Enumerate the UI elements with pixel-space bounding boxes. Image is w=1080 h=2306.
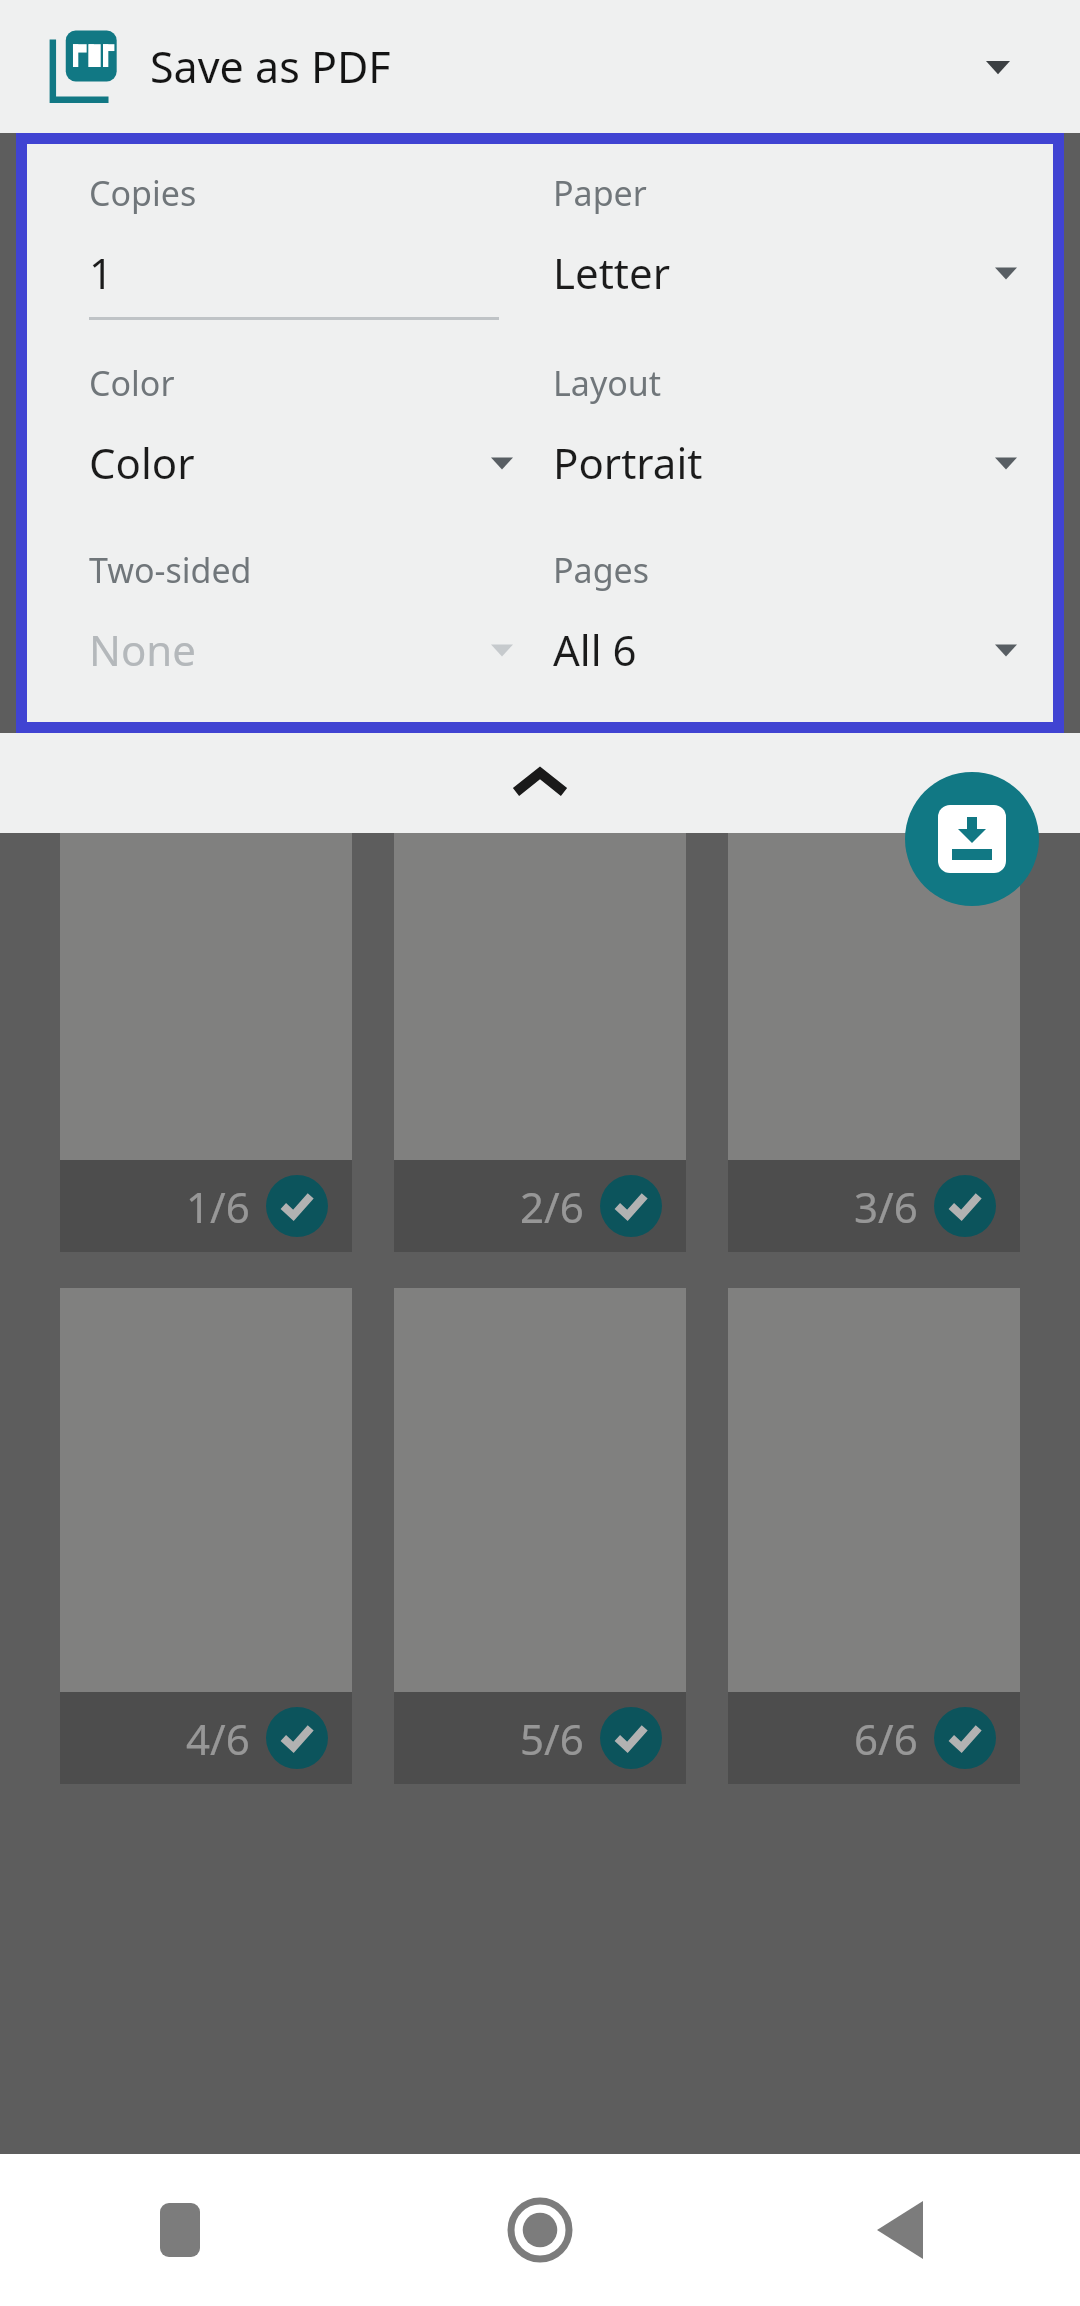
button[interactable]: Save as PDF	[0, 0, 1080, 133]
staticText: Paper	[553, 170, 647, 216]
staticText: 6/6	[854, 1710, 918, 1767]
staticText: 2/6	[520, 1178, 584, 1235]
staticText: Letter	[553, 244, 671, 301]
staticText: 1/6	[186, 1178, 250, 1235]
staticText: 4/6	[186, 1710, 250, 1767]
staticText: Color	[89, 434, 195, 491]
staticText: Copies	[89, 170, 197, 216]
staticText: All 6	[553, 621, 637, 678]
staticText: Layout	[553, 360, 662, 406]
button[interactable]: Home	[360, 2154, 720, 2306]
button[interactable]: Back	[720, 2154, 1080, 2306]
button[interactable]: Recent apps	[0, 2154, 360, 2306]
button[interactable]: 4/6	[60, 1288, 352, 1784]
staticText: Portrait	[553, 434, 703, 491]
staticText: Color	[89, 360, 175, 406]
button[interactable]: Save as PDF	[905, 772, 1039, 906]
button[interactable]: Letter	[553, 244, 1017, 301]
button[interactable]: Portrait	[553, 434, 1017, 491]
button[interactable]: None	[89, 621, 513, 678]
staticText: 1	[89, 244, 114, 301]
button[interactable]: 1	[89, 244, 513, 301]
button[interactable]: Color	[89, 434, 513, 491]
staticText: 5/6	[520, 1710, 584, 1767]
staticText: Save as PDF	[150, 37, 391, 96]
button[interactable]: Choose printer	[962, 31, 1034, 103]
button[interactable]: 6/6	[728, 1288, 1020, 1784]
staticText: Two-sided	[89, 547, 252, 593]
staticText: 3/6	[854, 1178, 918, 1235]
button[interactable]: 1/6	[60, 756, 352, 1252]
staticText: Pages	[553, 547, 650, 593]
button[interactable]: 3/6	[728, 756, 1020, 1252]
staticText: None	[89, 621, 196, 678]
button[interactable]: 5/6	[394, 1288, 686, 1784]
button[interactable]: All 6	[553, 621, 1017, 678]
button[interactable]: 2/6	[394, 756, 686, 1252]
button[interactable]: Collapse print options	[0, 733, 1080, 833]
